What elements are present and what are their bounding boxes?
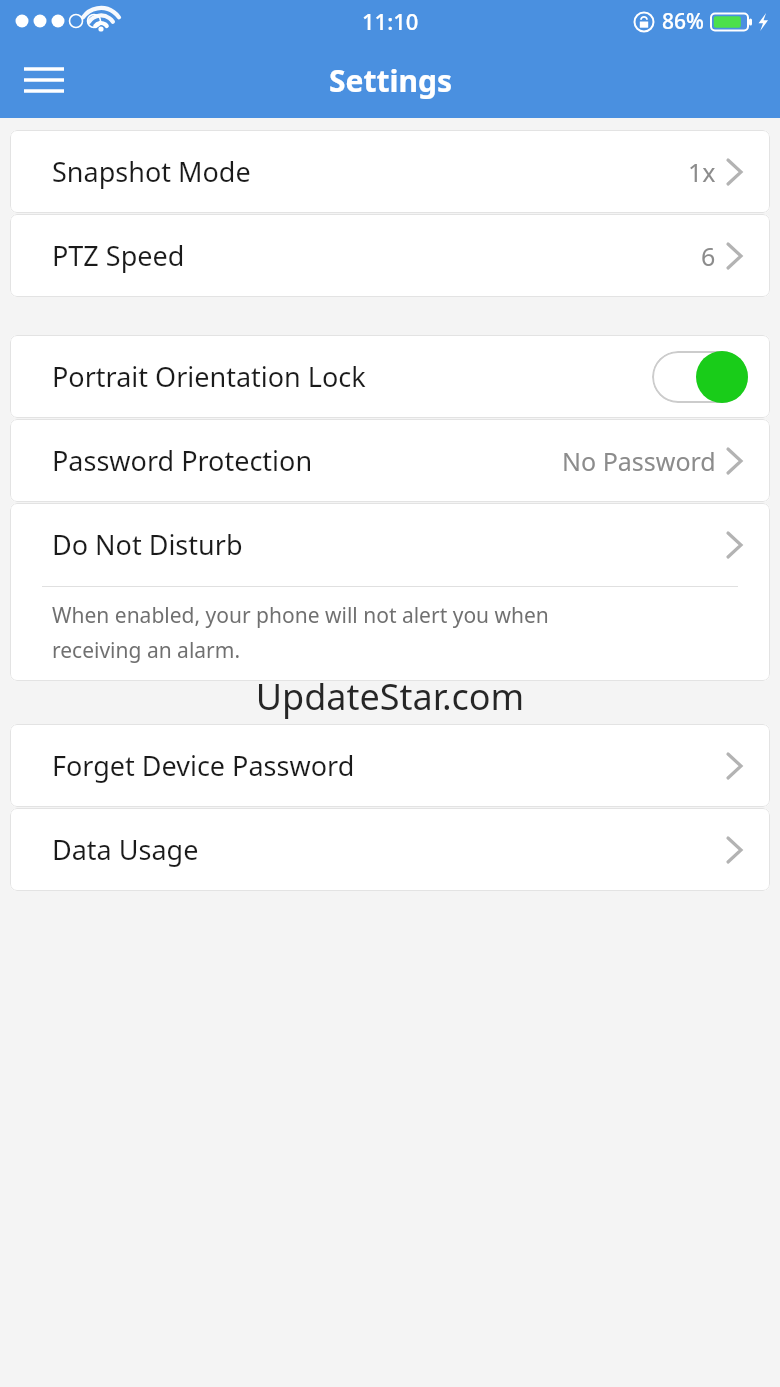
- staticText: PTZ Speed: [52, 237, 185, 274]
- staticText: receiving an alarm.: [52, 636, 241, 665]
- button[interactable]: Forget Device Password: [10, 724, 770, 807]
- staticText: Do Not Disturb: [52, 526, 243, 563]
- staticText: When enabled, your phone will not alert …: [52, 601, 549, 630]
- staticText: 1x: [688, 155, 716, 189]
- button[interactable]: Snapshot Mode: [10, 130, 770, 213]
- button[interactable]: Data Usage: [10, 808, 770, 891]
- staticText: Data Usage: [52, 831, 199, 868]
- staticText: Settings: [329, 60, 452, 101]
- staticText: No Password: [562, 444, 716, 478]
- staticText: Portrait Orientation Lock: [52, 358, 366, 395]
- button[interactable]: Portrait Orientation Lock toggle: [652, 349, 748, 405]
- button[interactable]: PTZ Speed: [10, 214, 770, 297]
- staticText: UpdateStar.com: [0, 672, 780, 721]
- staticText: 6: [701, 239, 716, 273]
- button[interactable]: Menu: [14, 52, 74, 108]
- staticText: Forget Device Password: [52, 747, 355, 784]
- button[interactable]: Portrait Orientation Lock: [10, 335, 770, 418]
- staticText: Password Protection: [52, 442, 313, 479]
- staticText: 86%: [662, 7, 704, 36]
- staticText: Snapshot Mode: [52, 153, 251, 190]
- button[interactable]: Password Protection: [10, 419, 770, 502]
- button[interactable]: Do Not Disturb: [10, 503, 770, 586]
- staticText: 11:10: [362, 6, 419, 36]
